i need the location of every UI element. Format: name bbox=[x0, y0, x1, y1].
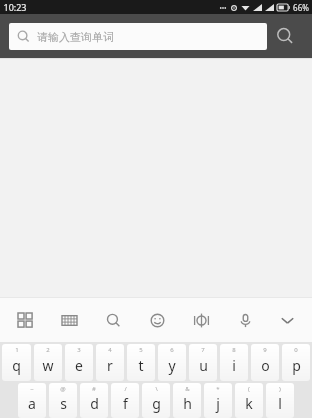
staticText: 1 bbox=[15, 346, 19, 354]
button[interactable]: \ bbox=[142, 383, 170, 418]
staticText: / bbox=[124, 385, 127, 393]
staticText: l bbox=[278, 394, 282, 413]
staticText: 0 bbox=[294, 346, 298, 354]
staticText: 66% bbox=[293, 2, 309, 13]
button[interactable]: @ bbox=[49, 383, 77, 418]
button[interactable]: 8 bbox=[220, 344, 248, 381]
staticText: f bbox=[123, 394, 128, 413]
button[interactable]: 7 bbox=[189, 344, 217, 381]
staticText: @ bbox=[60, 385, 66, 393]
staticText: 10:23 bbox=[3, 1, 27, 13]
staticText: \ bbox=[155, 385, 158, 393]
button[interactable]: & bbox=[173, 383, 201, 418]
button[interactable]: Keyboard layout bbox=[58, 309, 80, 331]
staticText: p bbox=[292, 356, 301, 375]
staticText: 4 bbox=[108, 346, 112, 354]
button[interactable]: Apps bbox=[14, 309, 36, 331]
staticText: d bbox=[90, 394, 99, 413]
staticText: 5 bbox=[139, 346, 143, 354]
staticText: ~ bbox=[30, 385, 34, 393]
staticText: 9 bbox=[263, 346, 267, 354]
staticText: a bbox=[28, 394, 36, 413]
button[interactable]: ( bbox=[235, 383, 263, 418]
staticText: j bbox=[216, 394, 220, 413]
staticText: h bbox=[183, 394, 192, 413]
staticText: g bbox=[152, 394, 161, 413]
staticText: 7 bbox=[201, 346, 205, 354]
staticText: ) bbox=[279, 385, 281, 393]
button[interactable]: 0 bbox=[282, 344, 310, 381]
staticText: # bbox=[92, 385, 96, 393]
staticText: q bbox=[12, 356, 21, 375]
staticText: 请输入查询单词 bbox=[37, 30, 114, 44]
button[interactable]: 9 bbox=[251, 344, 279, 381]
button[interactable]: 6 bbox=[158, 344, 186, 381]
button[interactable]: 4 bbox=[96, 344, 124, 381]
staticText: r bbox=[107, 356, 113, 375]
button[interactable]: Voice input bbox=[234, 309, 256, 331]
button[interactable]: Emoji bbox=[146, 309, 168, 331]
staticText: & bbox=[185, 385, 190, 393]
staticText: 6 bbox=[170, 346, 174, 354]
staticText: s bbox=[60, 394, 67, 413]
staticText: k bbox=[245, 394, 253, 413]
staticText: 8 bbox=[232, 346, 236, 354]
staticText: 3 bbox=[77, 346, 81, 354]
staticText: ( bbox=[248, 385, 250, 393]
button[interactable]: Search bbox=[267, 14, 303, 58]
button[interactable]: ~ bbox=[18, 383, 46, 418]
button[interactable]: # bbox=[80, 383, 108, 418]
button[interactable]: Search bbox=[102, 309, 124, 331]
staticText: w bbox=[42, 356, 54, 375]
button[interactable]: 2 bbox=[34, 344, 62, 381]
button[interactable]: 5 bbox=[127, 344, 155, 381]
staticText: e bbox=[75, 356, 83, 375]
button[interactable]: 1 bbox=[2, 344, 31, 381]
staticText: t bbox=[138, 356, 144, 375]
staticText: y bbox=[168, 356, 176, 375]
button[interactable]: * bbox=[204, 383, 232, 418]
button[interactable]: Theme bbox=[190, 309, 212, 331]
staticText: * bbox=[216, 385, 220, 393]
button[interactable]: 请输入查询单词 bbox=[9, 23, 267, 50]
button[interactable]: ) bbox=[266, 383, 294, 418]
button[interactable]: 3 bbox=[65, 344, 93, 381]
staticText: u bbox=[199, 356, 208, 375]
button[interactable]: Hide keyboard bbox=[272, 305, 302, 335]
button[interactable]: / bbox=[111, 383, 139, 418]
staticText: o bbox=[261, 356, 270, 375]
staticText: i bbox=[232, 356, 236, 375]
staticText: 2 bbox=[46, 346, 50, 354]
